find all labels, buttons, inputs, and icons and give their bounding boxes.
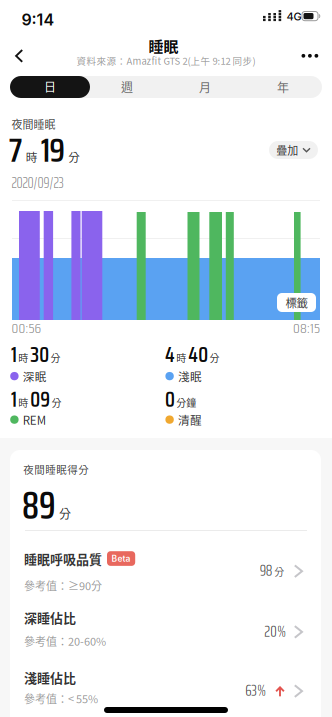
button[interactable]: 深睡佔比 (24, 610, 308, 660)
staticText: 0 (165, 383, 175, 416)
staticText: 日 (44, 79, 56, 93)
staticText: 參考值：≥90分 (24, 579, 102, 592)
staticText: 時 (176, 352, 186, 363)
staticText: 4G (286, 10, 301, 23)
staticText: 89 (22, 474, 56, 536)
staticText: 分 (50, 352, 60, 363)
staticText: 08:15 (293, 317, 320, 339)
button[interactable]: 疊加 (269, 141, 318, 159)
staticText: 4 (165, 339, 175, 371)
staticText: 淺眠 (178, 369, 202, 383)
staticText: 淺睡佔比 (24, 670, 76, 685)
staticText: Beta (112, 553, 131, 564)
staticText: 睡眠 (148, 37, 178, 54)
staticText: 分 (274, 566, 284, 577)
staticText: 資料來源：Amazfit GTS 2(上午 9:12 同步) (76, 55, 255, 66)
staticText: 63% (245, 678, 266, 703)
staticText: 週 (121, 80, 133, 94)
staticText: 09 (30, 383, 50, 416)
staticText: 夜間睡眠 (11, 117, 55, 130)
staticText: 參考值：< 55% (24, 692, 98, 705)
button[interactable]: 睡眠呼吸品質 (24, 551, 308, 601)
staticText: 19 (41, 124, 65, 176)
staticText: 分鐘 (176, 397, 196, 408)
staticText: 分 (209, 352, 219, 363)
button[interactable]: 淺睡佔比 (24, 670, 308, 715)
button[interactable]: 日 (10, 76, 90, 98)
button[interactable]: 年 (244, 76, 322, 99)
staticText: 分 (68, 150, 80, 163)
staticText: 參考值：20-60% (24, 634, 106, 647)
staticText: 年 (277, 80, 289, 94)
staticText: REM (23, 413, 46, 426)
staticText: 7 (9, 124, 23, 176)
staticText: 睡眠呼吸品質 (24, 551, 102, 566)
staticText: 9:14 (21, 10, 54, 29)
staticText: 30 (30, 339, 49, 371)
staticText: 20% (264, 619, 286, 643)
staticText: 98 (260, 558, 273, 582)
staticText: 分 (59, 507, 71, 520)
staticText: 時 (18, 397, 28, 408)
staticText: 00:56 (11, 317, 41, 339)
staticText: 時 (18, 352, 28, 363)
button[interactable]: Back (11, 45, 27, 67)
staticText: 疊加 (276, 144, 298, 156)
staticText: 深睡佔比 (24, 610, 76, 625)
staticText: 月 (199, 80, 211, 94)
staticText: 夜間睡眠得分 (23, 463, 89, 475)
staticText: 清醒 (178, 413, 202, 426)
button[interactable]: 週 (88, 76, 166, 99)
staticText: 時 (26, 150, 38, 163)
button[interactable]: 月 (166, 76, 244, 99)
button[interactable]: 標籤 (277, 293, 316, 312)
button[interactable]: More (297, 50, 322, 62)
staticText: 分 (51, 397, 61, 408)
staticText: 標籤 (285, 296, 307, 309)
staticText: 1 (11, 383, 17, 416)
staticText: 2020/09/23 (11, 171, 63, 194)
staticText: 1 (11, 339, 17, 371)
staticText: 40 (188, 339, 208, 371)
staticText: 深眠 (23, 369, 47, 383)
